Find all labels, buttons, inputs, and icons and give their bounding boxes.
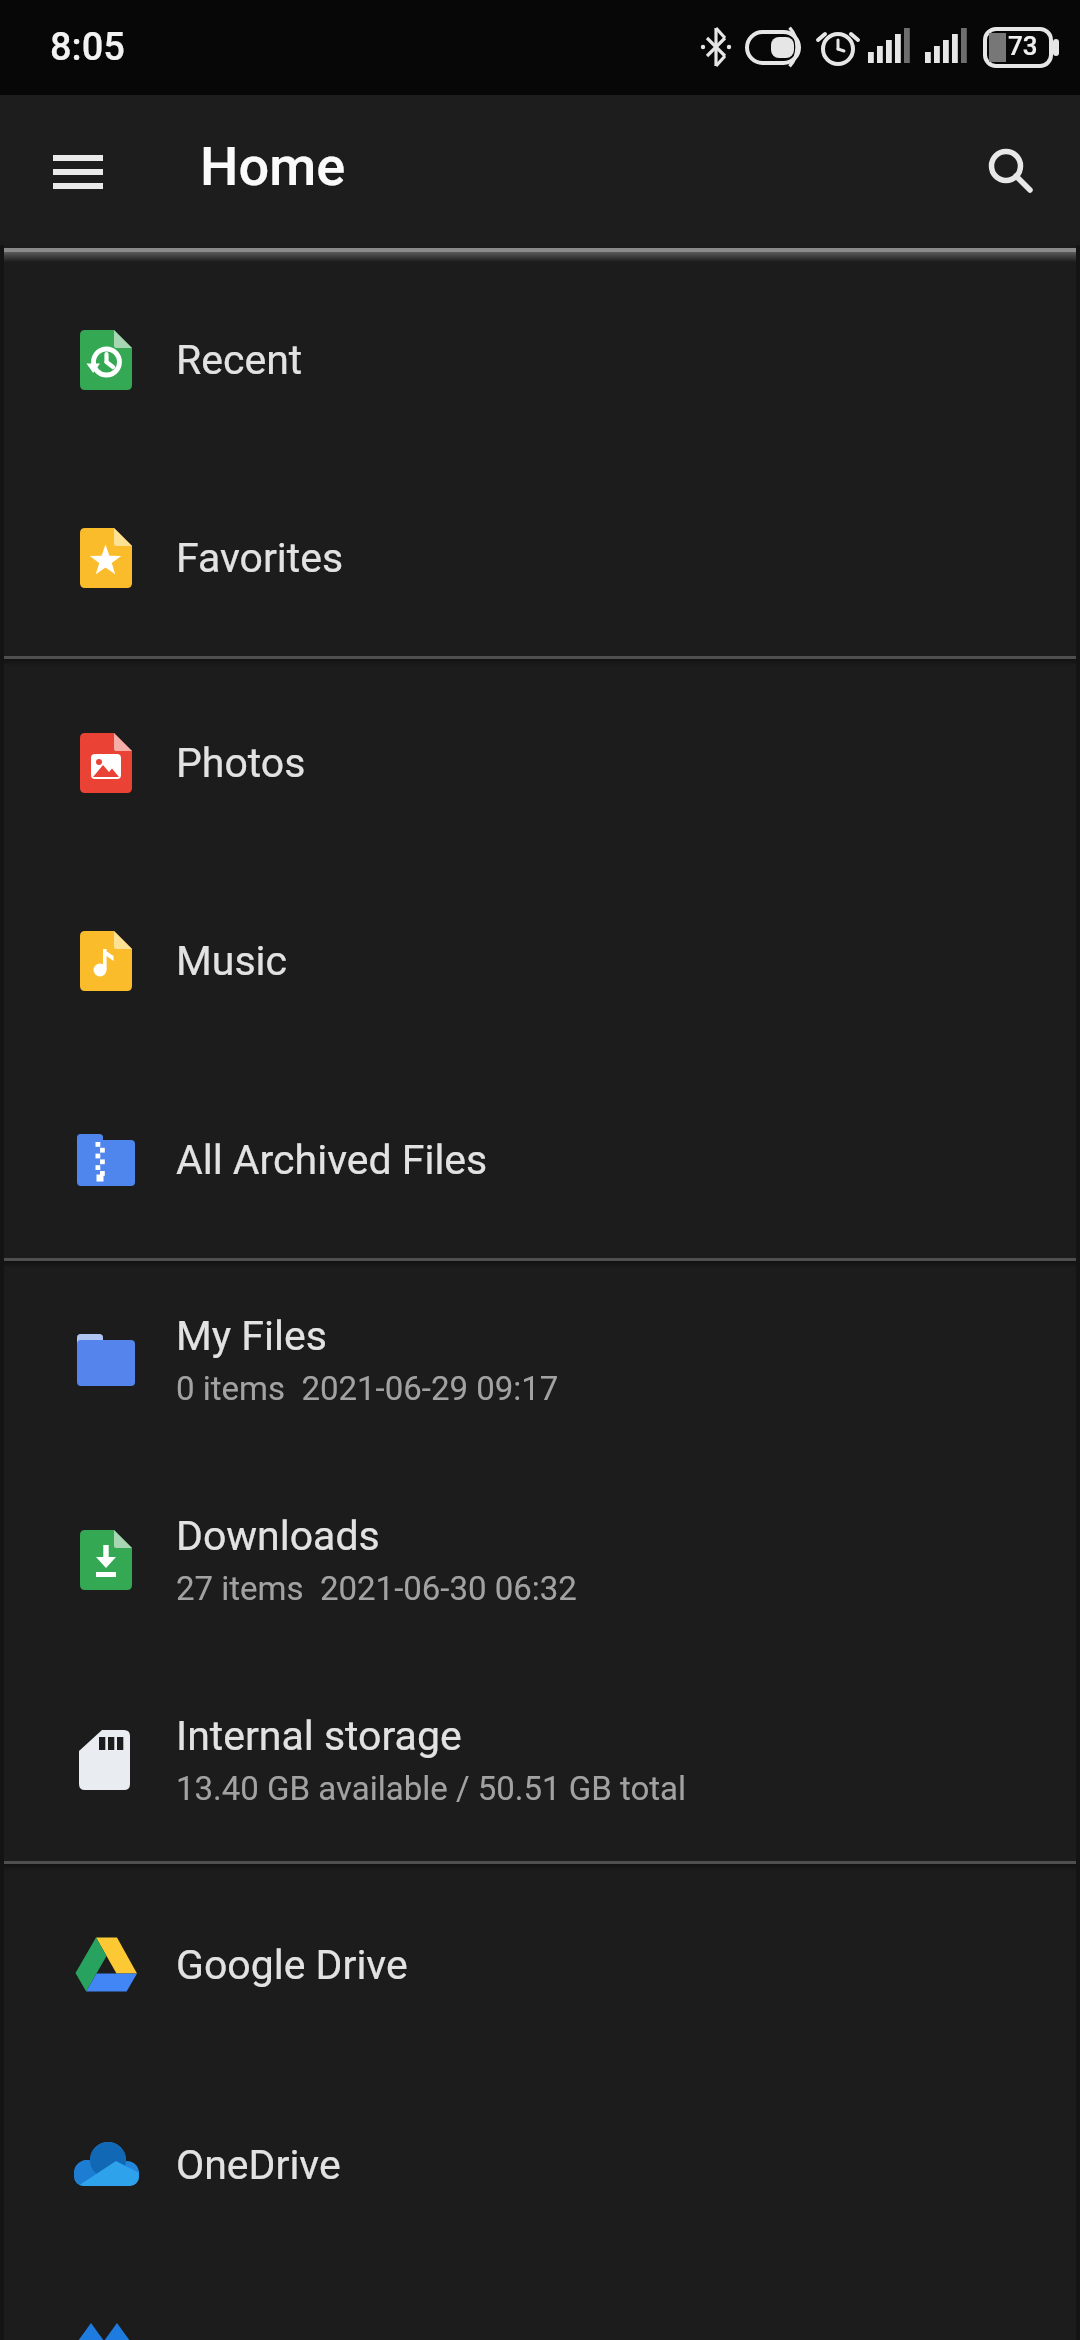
staticText: Google Drive: [176, 1941, 408, 1989]
staticText: Home: [200, 135, 346, 198]
staticText: Music: [176, 937, 287, 985]
button[interactable]: [0, 95, 110, 245]
button[interactable]: Music: [0, 861, 1080, 1061]
button[interactable]: OneDrive: [0, 2065, 1080, 2265]
button[interactable]: Favorites: [0, 458, 1080, 658]
button[interactable]: Recent: [0, 260, 1080, 460]
staticText: 0 items 2021-06-29 09:17: [176, 1369, 559, 1408]
staticText: My Files: [176, 1312, 327, 1360]
staticText: 13.40 GB available / 50.51 GB total: [176, 1769, 687, 1808]
staticText: Recent: [176, 336, 303, 384]
staticText: 27 items 2021-06-30 06:32: [176, 1569, 577, 1608]
button[interactable]: Google Drive: [0, 1865, 1080, 2065]
button[interactable]: [78, 2300, 138, 2340]
staticText: Favorites: [176, 534, 344, 582]
button[interactable]: Downloads: [0, 1460, 1080, 1660]
staticText: Internal storage: [176, 1712, 462, 1760]
staticText: Downloads: [176, 1512, 380, 1560]
staticText: All Archived Files: [176, 1136, 488, 1184]
staticText: 8:05: [50, 25, 125, 70]
button[interactable]: Internal storage: [0, 1660, 1080, 1860]
staticText: OneDrive: [176, 2141, 341, 2189]
button[interactable]: [980, 95, 1080, 245]
staticText: 73: [1008, 31, 1038, 61]
button[interactable]: My Files: [0, 1260, 1080, 1460]
button[interactable]: Photos: [0, 663, 1080, 863]
staticText: Photos: [176, 739, 306, 787]
button[interactable]: All Archived Files: [0, 1060, 1080, 1260]
